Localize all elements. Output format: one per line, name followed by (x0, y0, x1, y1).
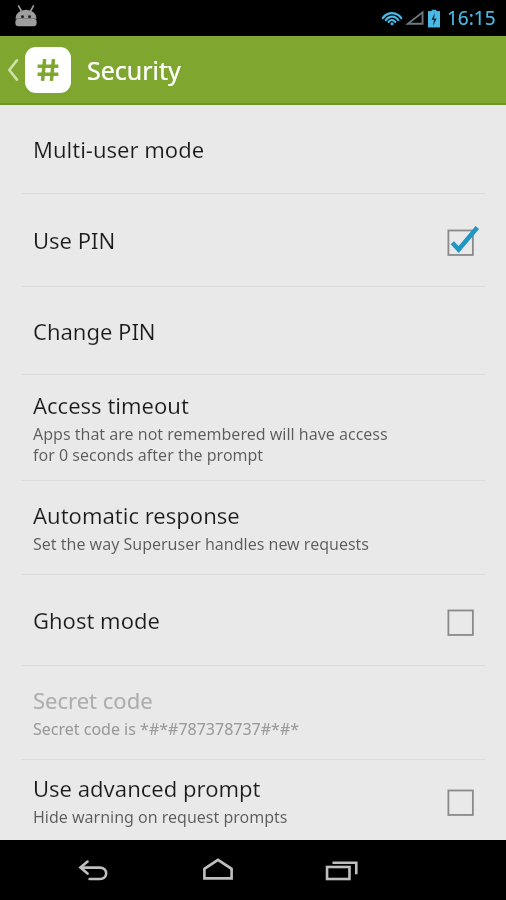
button[interactable]: Recent apps (310, 840, 374, 900)
staticText: Secret code (33, 685, 153, 715)
button[interactable]: Home (186, 840, 250, 900)
button[interactable]: Automatic response (0, 481, 506, 574)
button[interactable]: Secret code (0, 666, 506, 759)
staticText: Apps that are not remembered will have a… (33, 423, 388, 466)
staticText: Access timeout (33, 390, 189, 420)
button[interactable]: Ghost mode (0, 575, 506, 665)
staticText: 16:15 (447, 5, 496, 31)
staticText: Ghost mode (33, 605, 160, 635)
staticText: Use advanced prompt (33, 773, 261, 803)
button[interactable]: Navigate up (0, 36, 75, 103)
button[interactable]: Use PIN (0, 194, 506, 286)
button[interactable]: Change PIN (0, 287, 506, 374)
button[interactable]: Back (61, 840, 125, 900)
staticText: Security (87, 53, 181, 87)
staticText: Secret code is *#*#787378737#*#* (33, 718, 300, 740)
staticText: Set the way Superuser handles new reques… (33, 533, 370, 555)
staticText: Automatic response (33, 500, 240, 530)
button[interactable]: Multi-user mode (0, 105, 506, 193)
button[interactable]: Use advanced prompt (0, 760, 506, 840)
staticText: Use PIN (33, 225, 116, 255)
button[interactable]: Access timeout (0, 375, 506, 480)
staticText: Change PIN (33, 316, 156, 346)
staticText: Multi-user mode (33, 134, 205, 164)
staticText: Hide warning on request prompts (33, 806, 288, 828)
